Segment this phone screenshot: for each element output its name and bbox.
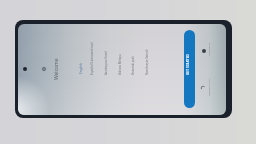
- button[interactable]: [87, 42, 99, 78]
- other: Emergency call: [201, 86, 205, 90]
- button[interactable]: [76, 58, 87, 80]
- button[interactable]: [114, 42, 126, 78]
- button[interactable]: [200, 70, 218, 102]
- button[interactable]: [127, 42, 139, 78]
- button[interactable]: [184, 30, 195, 108]
- button[interactable]: [142, 42, 154, 78]
- button[interactable]: [200, 36, 218, 62]
- other: Change language: [42, 67, 46, 71]
- button[interactable]: [100, 42, 112, 78]
